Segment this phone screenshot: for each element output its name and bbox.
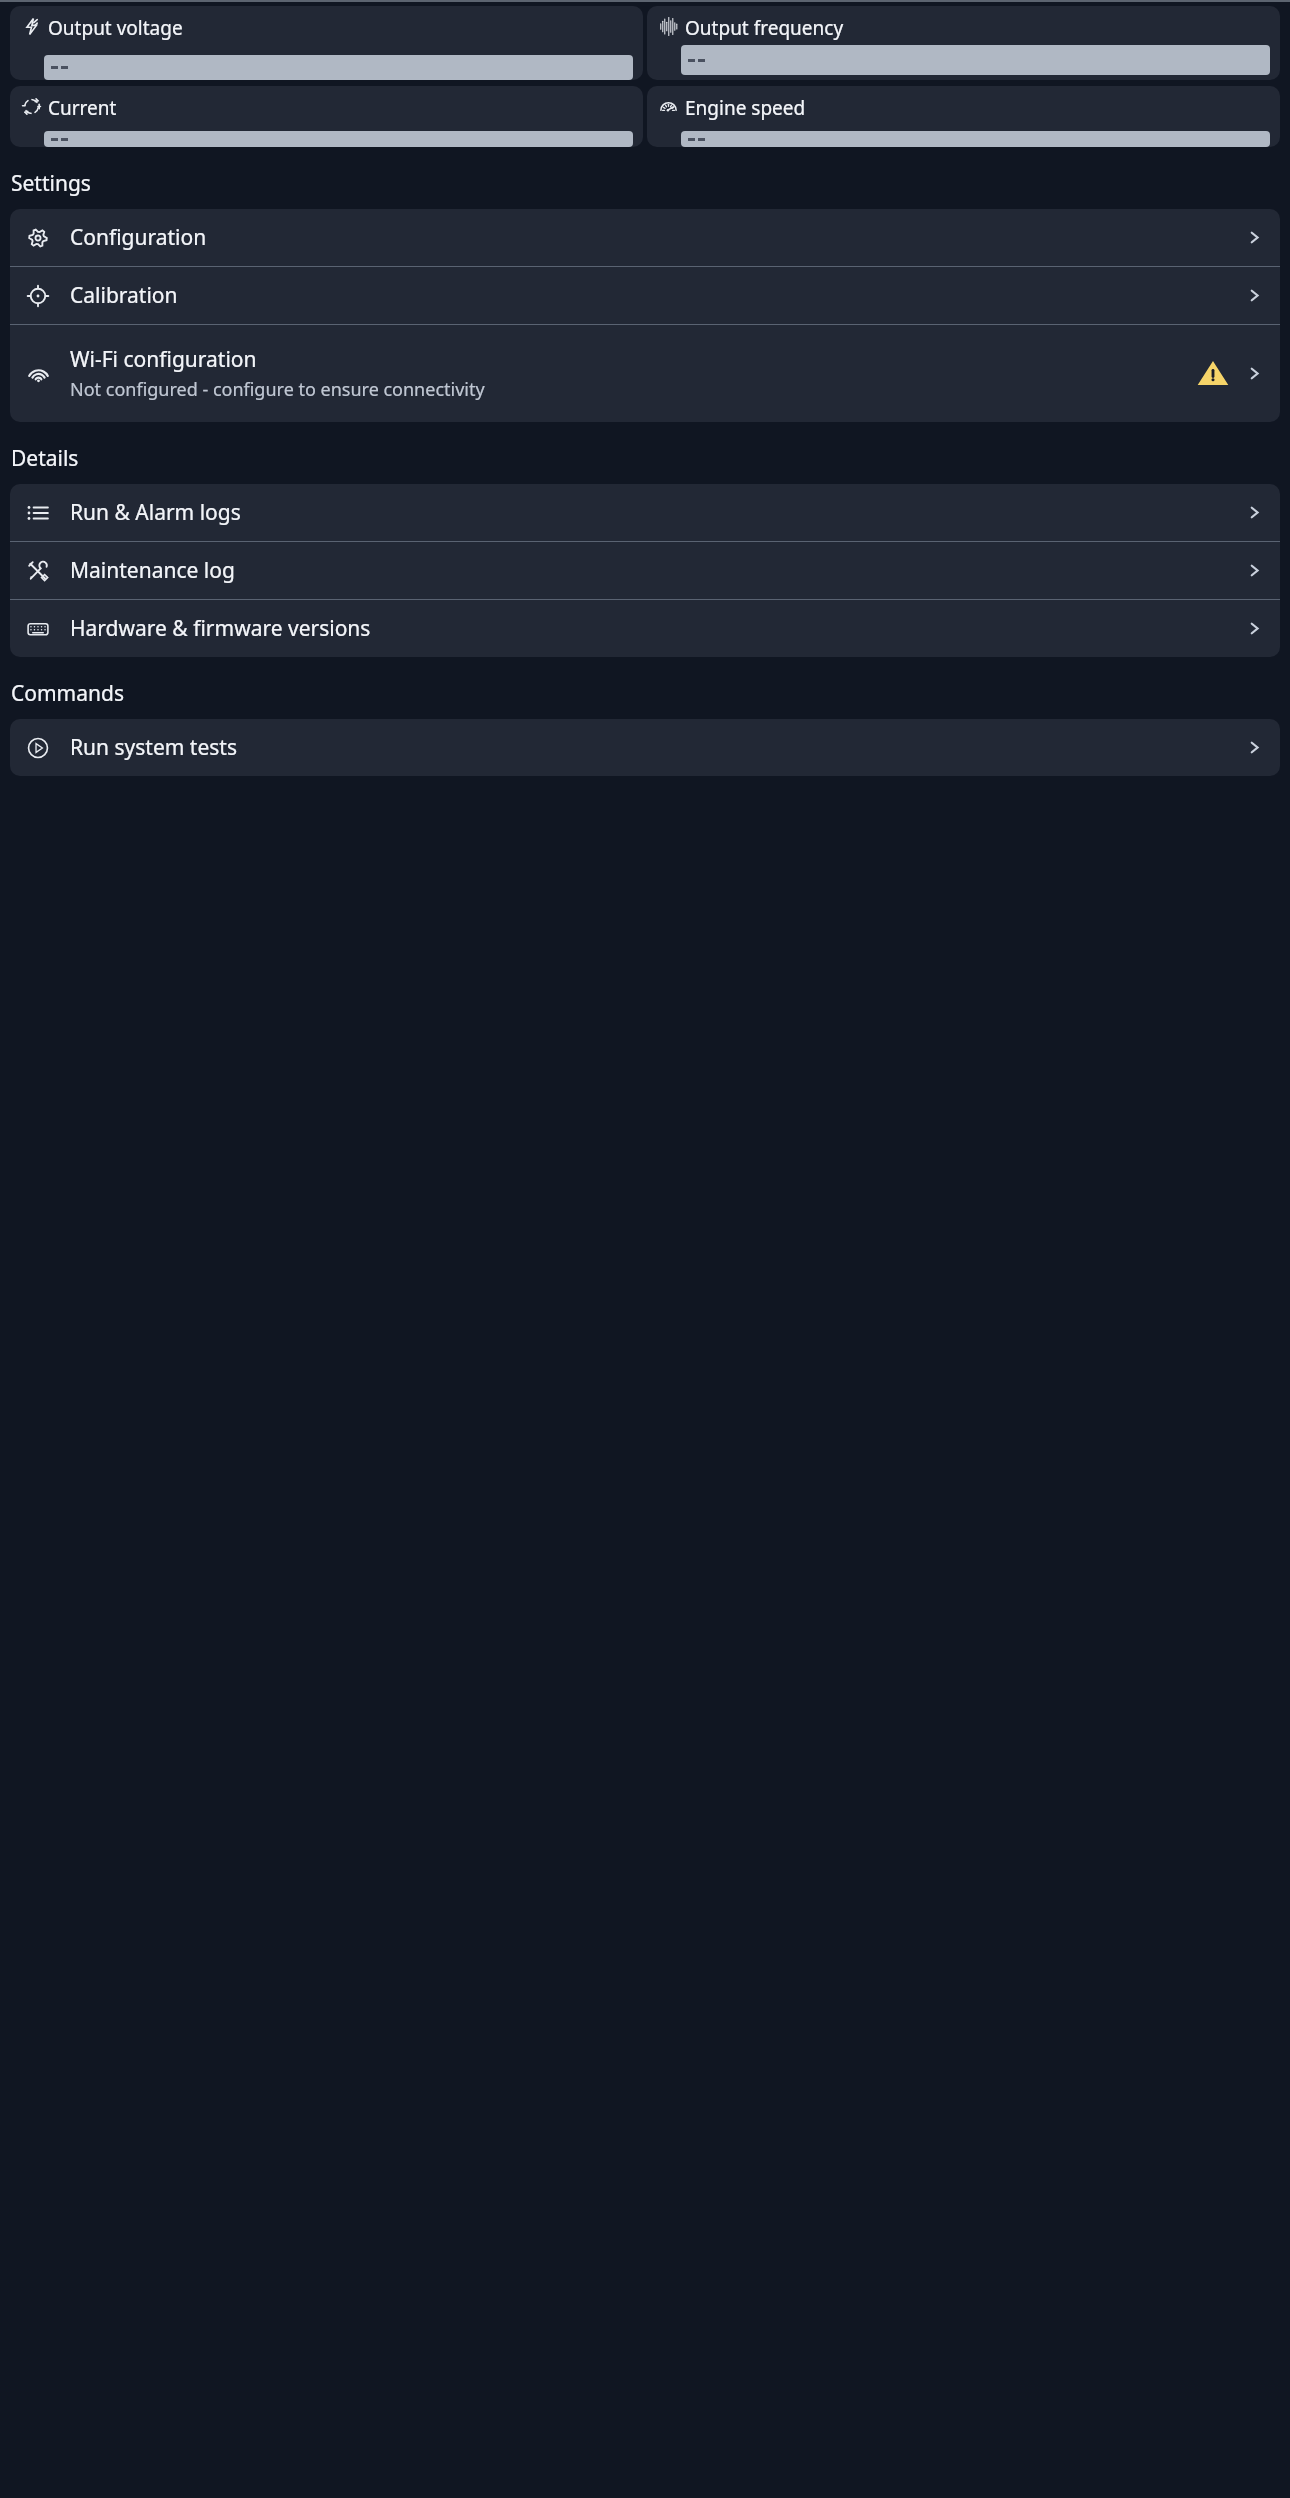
staticText: Engine speed [685,95,806,121]
button[interactable]: Run system tests [10,719,1280,776]
button[interactable]: Output voltage [10,6,643,80]
staticText: Run & Alarm logs [70,498,1246,527]
staticText: Settings [11,169,91,198]
staticText: Output voltage [48,15,183,41]
staticText: Configuration [70,223,1246,252]
button[interactable]: Configuration [10,209,1280,266]
staticText: Run system tests [70,733,1246,762]
staticText: Details [11,444,79,473]
button[interactable]: Run & Alarm logs [10,484,1280,541]
staticText: Output frequency [685,15,844,41]
button[interactable]: Calibration [10,267,1280,324]
button[interactable]: Current [10,86,643,147]
button[interactable]: Maintenance log [10,542,1280,599]
other: Warning [1200,361,1226,387]
staticText: Current [48,95,117,121]
staticText: Calibration [70,281,1246,310]
button[interactable]: Hardware & firmware versions [10,600,1280,657]
staticText: Wi-Fi configuration [70,345,257,374]
staticText: Hardware & firmware versions [70,614,1246,643]
button[interactable]: Output frequency [647,6,1280,80]
button[interactable]: Engine speed [647,86,1280,147]
staticText: Not configured - configure to ensure con… [70,377,485,402]
button[interactable]: Wi-Fi configuration [10,325,1280,422]
staticText: Commands [11,679,124,708]
staticText: Maintenance log [70,556,1246,585]
